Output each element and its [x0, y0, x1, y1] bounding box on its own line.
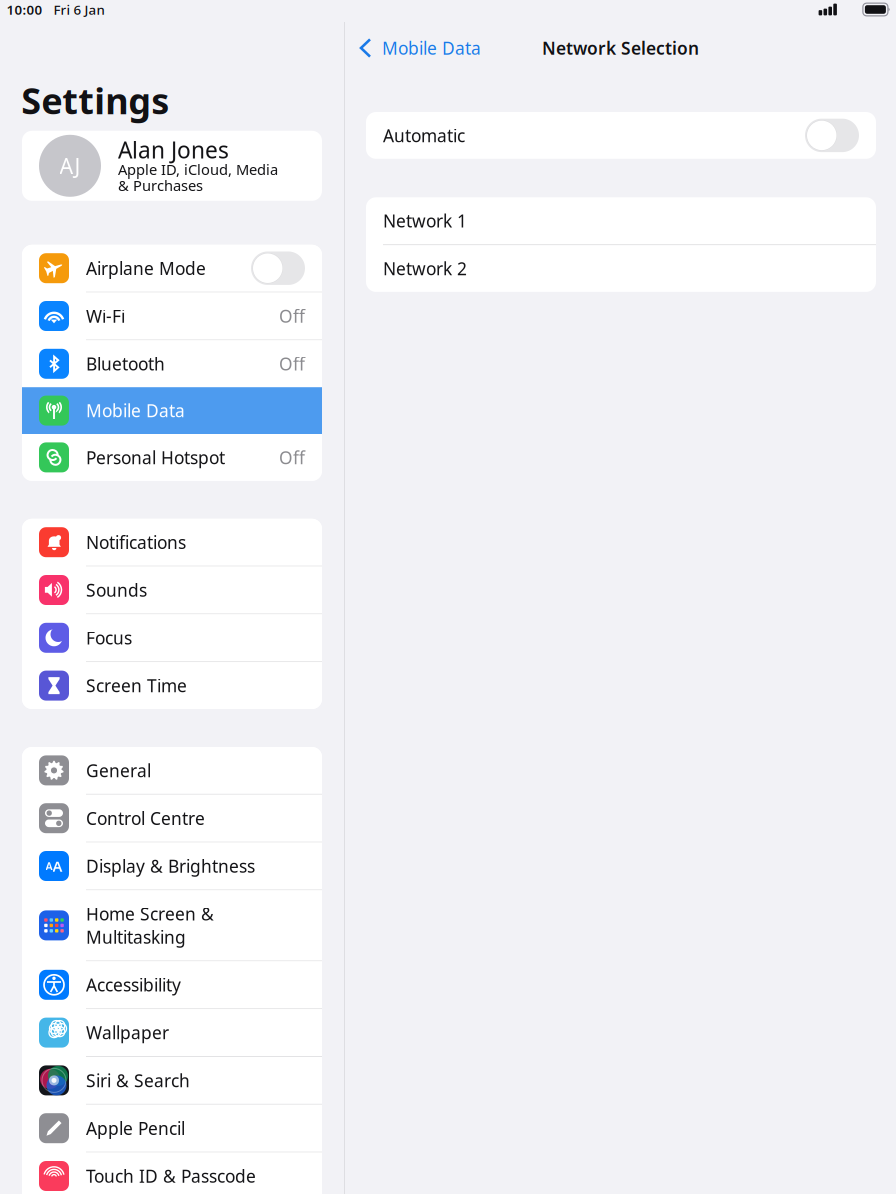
staticText: Mobile Data [382, 36, 481, 59]
staticText: Control Centre [86, 807, 205, 830]
staticText: AJ [59, 152, 80, 180]
staticText: A [45, 859, 52, 873]
staticText: Network Selection [542, 36, 699, 59]
staticText: Focus [86, 626, 132, 649]
staticText: Apple Pencil [86, 1117, 185, 1140]
button[interactable]: Wi-Fi [22, 293, 322, 339]
staticText: Fri 6 Jan [53, 1, 104, 18]
button[interactable]: Wallpaper [22, 1009, 322, 1056]
button[interactable]: Control Centre [22, 795, 322, 842]
button[interactable]: Home Screen & Multitasking [22, 890, 322, 960]
staticText: Accessibility [86, 973, 181, 996]
staticText: Wallpaper [86, 1021, 169, 1044]
staticText: A [52, 856, 62, 876]
button[interactable]: AJ [22, 131, 322, 201]
staticText: Off [279, 446, 305, 469]
button[interactable]: Accessibility [22, 961, 322, 1008]
button[interactable]: General [22, 747, 322, 794]
staticText: General [86, 759, 151, 782]
staticText: Settings [21, 76, 169, 124]
staticText: 10:00 [6, 1, 42, 18]
staticText: Automatic [383, 124, 465, 147]
button[interactable]: Mobile Data [345, 26, 495, 70]
button[interactable]: Screen Time [22, 662, 322, 709]
staticText: Bluetooth [86, 352, 165, 375]
staticText: Mobile Data [86, 399, 185, 422]
button[interactable]: Network 2 [366, 245, 876, 292]
staticText: Off [279, 352, 305, 375]
staticText: Display & Brightness [86, 854, 255, 877]
staticText: Airplane Mode [86, 257, 206, 280]
staticText: Personal Hotspot [86, 446, 225, 469]
staticText: & Purchases [118, 176, 203, 195]
button[interactable]: Touch ID & Passcode [22, 1153, 322, 1194]
staticText: Sounds [86, 578, 147, 601]
staticText: Off [279, 304, 305, 327]
staticText: Wi-Fi [86, 304, 125, 327]
button[interactable]: Sounds [22, 567, 322, 613]
staticText: Home Screen & Multitasking [86, 902, 214, 948]
staticText: Network 1 [383, 209, 467, 232]
button[interactable]: Mobile Data [22, 387, 322, 434]
staticText: Notifications [86, 531, 186, 554]
button[interactable]: Notifications [22, 519, 322, 566]
staticText: Alan Jones [118, 135, 229, 165]
button[interactable]: A [22, 843, 322, 889]
button[interactable]: Focus [22, 614, 322, 661]
button[interactable]: Network 1 [366, 197, 876, 244]
button[interactable]: Bluetooth [22, 340, 322, 387]
staticText: Apple ID, iCloud, Media [118, 160, 278, 179]
staticText: Screen Time [86, 674, 187, 697]
staticText: Network 2 [383, 257, 467, 280]
button[interactable]: Apple Pencil [22, 1105, 322, 1152]
staticText: Touch ID & Passcode [86, 1164, 256, 1187]
button[interactable]: Airplane Mode [22, 245, 322, 292]
button[interactable]: Siri & Search [22, 1057, 322, 1104]
button[interactable]: Personal Hotspot [22, 434, 322, 481]
staticText: Siri & Search [86, 1069, 190, 1092]
button[interactable]: Automatic [366, 112, 876, 159]
